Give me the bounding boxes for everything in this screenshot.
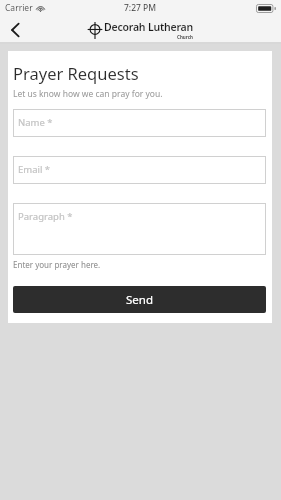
staticText: Send xyxy=(126,292,153,308)
button[interactable]: Paragraph * xyxy=(13,203,266,255)
button[interactable]: Send xyxy=(13,286,266,313)
staticText: Let us know how we can pray for you. xyxy=(13,88,163,100)
button[interactable]: Name * xyxy=(13,109,266,137)
staticText: Decorah Lutheran xyxy=(104,20,194,34)
button[interactable]: Back xyxy=(0,16,30,44)
staticText: Paragraph * xyxy=(18,210,73,223)
staticText: Enter your prayer here. xyxy=(13,259,101,270)
staticText: Prayer Requests xyxy=(13,62,139,84)
staticText: Email * xyxy=(18,163,51,176)
staticText: Church xyxy=(177,34,193,40)
staticText: 7:27 PM xyxy=(124,2,157,14)
staticText: Name * xyxy=(18,116,53,129)
staticText: Carrier xyxy=(5,2,33,14)
button[interactable]: Email * xyxy=(13,156,266,184)
